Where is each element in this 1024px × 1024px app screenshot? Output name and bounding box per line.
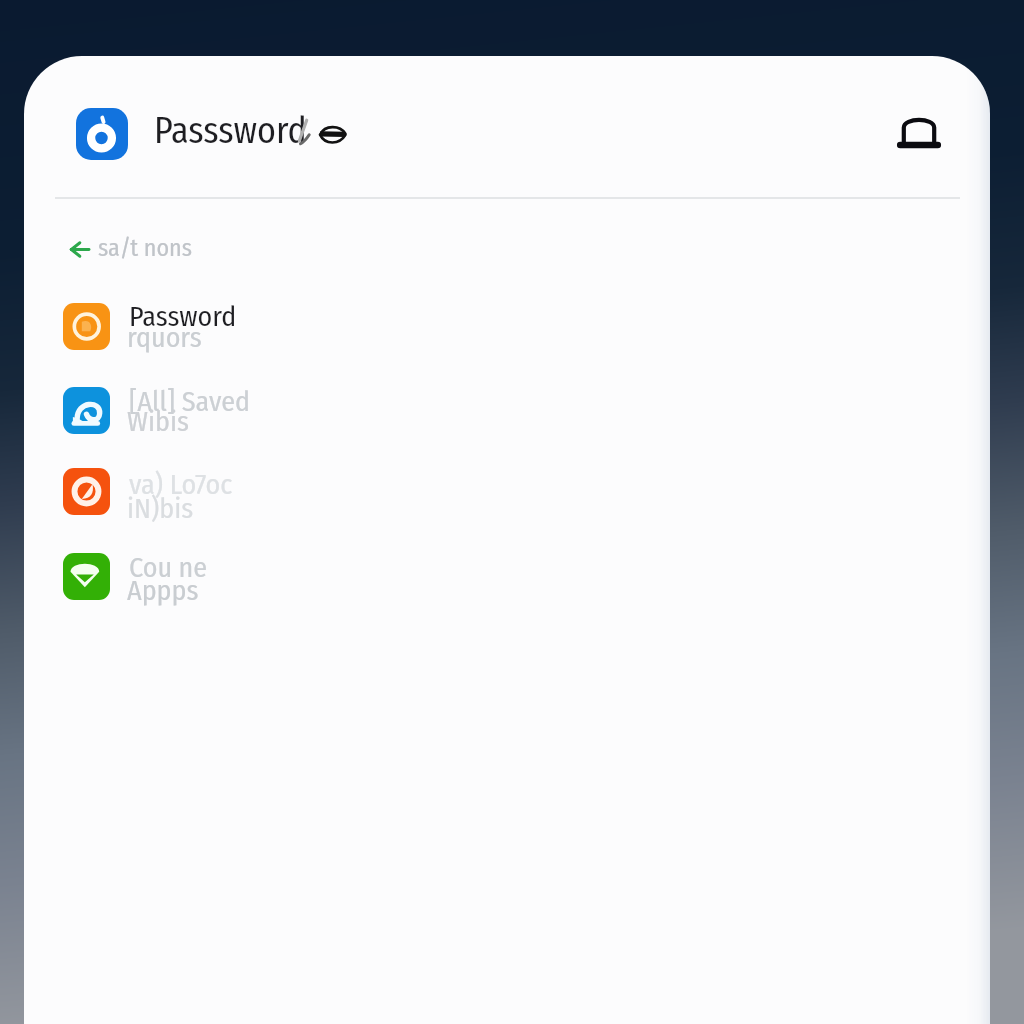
staticText: Passsword: [154, 109, 307, 152]
button[interactable]: Lock: [890, 104, 948, 157]
staticText: Cou ne: [129, 551, 208, 585]
button[interactable]: [All] Saved: [50, 377, 380, 444]
button[interactable]: va) Lo7oc: [50, 458, 380, 525]
button[interactable]: Cou ne: [50, 543, 380, 610]
button[interactable]: sa/t nons: [58, 226, 206, 272]
staticText: sa/t nons: [98, 234, 193, 263]
button[interactable]: Password: [50, 293, 380, 360]
button[interactable]: Show password: [312, 118, 352, 150]
staticText: Appps: [127, 574, 199, 608]
staticText: iN)bis: [127, 492, 194, 526]
staticText: Password: [129, 300, 237, 334]
staticText: rquors: [127, 321, 202, 355]
staticText: Wibis: [127, 405, 189, 439]
staticText: [All] Saved: [129, 385, 251, 419]
button[interactable]: Password app icon: [76, 108, 128, 160]
staticText: va) Lo7oc: [129, 468, 233, 502]
